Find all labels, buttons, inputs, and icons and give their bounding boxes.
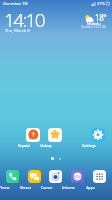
button[interactable]: Tapatalk	[26, 128, 40, 142]
staticText: Settings	[82, 143, 96, 148]
staticText: Updated 14:10 AM	[81, 25, 107, 29]
staticText: Thu, March 9	[5, 28, 30, 33]
staticText: Messages	[19, 185, 32, 190]
staticText: Camera	[40, 185, 53, 190]
staticText: 14:10	[4, 7, 45, 33]
staticText: Internet	[62, 185, 75, 190]
button[interactable]: Phone	[6, 170, 19, 183]
button[interactable]: Messages	[28, 170, 41, 183]
staticText: 18°	[95, 12, 107, 23]
staticText: Galaxy Apps	[39, 143, 53, 148]
staticText: Apps	[86, 185, 95, 190]
staticText: Phone	[0, 185, 10, 190]
staticText: Gonestoo TN	[3, 1, 28, 6]
button[interactable]: Galaxy Apps	[48, 128, 62, 142]
staticText: 37%	[97, 1, 105, 6]
button[interactable]: Camera	[49, 170, 62, 183]
staticText: Tapatalk	[17, 143, 31, 148]
staticText: Makalu	[87, 21, 101, 26]
button[interactable]: 18°	[83, 11, 112, 22]
button[interactable]: Internet	[71, 170, 84, 183]
button[interactable]: Apps	[93, 170, 106, 183]
button[interactable]: Settings	[91, 128, 105, 142]
